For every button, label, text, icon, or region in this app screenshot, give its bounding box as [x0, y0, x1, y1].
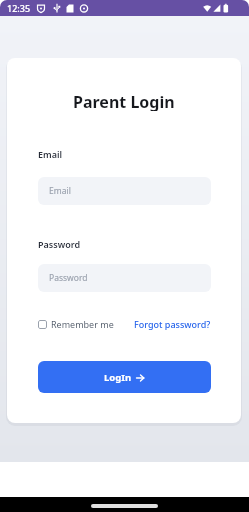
staticText: 12:35	[7, 2, 31, 14]
button[interactable]: Forgot password?	[134, 318, 211, 330]
staticText: Password	[49, 272, 88, 284]
staticText: Email	[38, 148, 63, 160]
button[interactable]: Email	[38, 177, 211, 205]
staticText: LogIn	[104, 371, 132, 384]
button[interactable]	[91, 504, 158, 508]
button[interactable]: Password	[38, 264, 211, 292]
staticText: Parent Login	[73, 91, 175, 111]
button[interactable]: Remember me	[38, 318, 114, 330]
staticText: Forgot password?	[134, 318, 211, 330]
staticText: Email	[49, 185, 71, 197]
staticText: Remember me	[51, 318, 114, 330]
staticText: Password	[38, 238, 81, 250]
button[interactable]: LogIn	[38, 361, 211, 393]
